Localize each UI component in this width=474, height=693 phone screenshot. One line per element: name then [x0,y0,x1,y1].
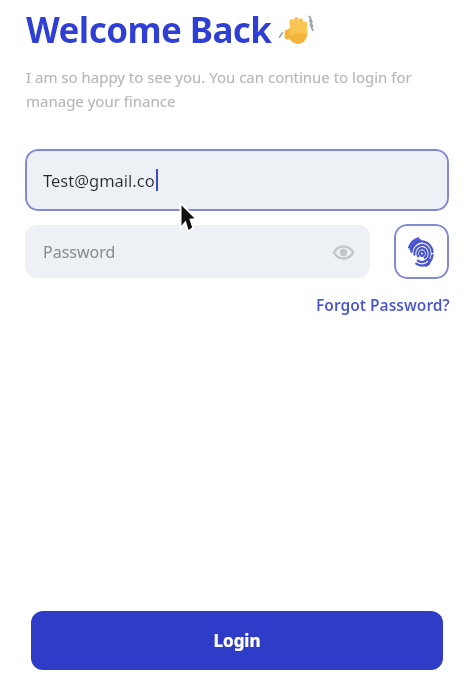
button[interactable]: Show password [326,235,360,269]
button[interactable]: Forgot Password? [314,292,452,317]
staticText: I am so happy to see you. You can contin… [26,67,452,111]
button[interactable]: Test@gmail.co [25,149,449,211]
staticText: Test@gmail.co [43,169,155,191]
staticText: Password [43,241,116,263]
button[interactable]: Login with fingerprint [394,224,449,279]
staticText: Welcome Back [26,6,272,54]
button[interactable]: Login [31,611,443,670]
staticText: Login [213,629,261,652]
staticText: Forgot Password? [316,294,450,315]
button[interactable]: Password [25,225,370,278]
